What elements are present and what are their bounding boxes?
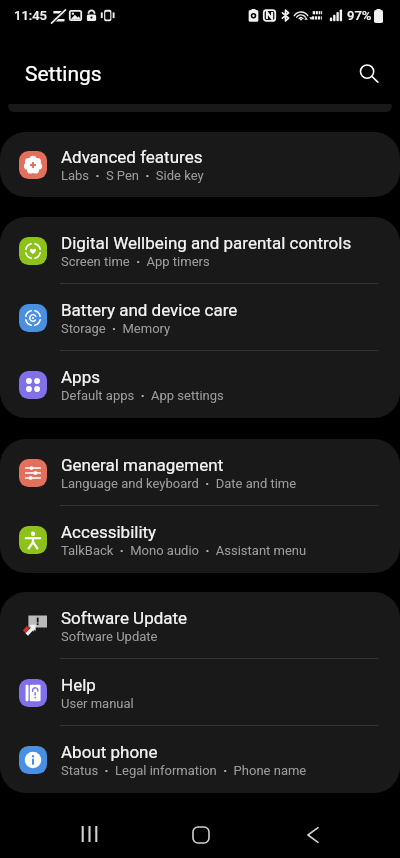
staticText: Battery and device care [61, 300, 238, 320]
staticText: Default apps · App settings [61, 388, 224, 403]
staticText: Storage · Memory [61, 321, 171, 336]
staticText: Advanced features [61, 147, 203, 167]
button[interactable]: Digital Wellbeing and parental controls [0, 217, 400, 284]
button[interactable]: Apps [0, 351, 400, 418]
staticText: Labs · S Pen · Side key [61, 168, 204, 183]
staticText: Software Update [61, 608, 188, 628]
button[interactable]: General management [0, 439, 400, 506]
staticText: Software Update [61, 629, 158, 644]
staticText: 97% [347, 8, 372, 23]
button[interactable]: About phone [0, 726, 400, 793]
staticText: Language and keyboard · Date and time [61, 476, 297, 491]
button[interactable]: Battery and device care [0, 284, 400, 351]
staticText: General management [61, 455, 224, 475]
staticText: About phone [61, 742, 158, 762]
button[interactable]: Accessibility [0, 506, 400, 573]
button[interactable]: Search [347, 52, 391, 96]
button[interactable]: Help [0, 659, 400, 726]
button[interactable]: Back [257, 827, 369, 858]
button[interactable]: Software Update [0, 592, 400, 659]
staticText: Apps [61, 367, 100, 387]
staticText: Help [61, 675, 96, 695]
staticText: Digital Wellbeing and parental controls [61, 233, 352, 253]
staticText: 11:45 [14, 8, 47, 23]
button[interactable]: Home [145, 827, 257, 858]
staticText: User manual [61, 696, 134, 711]
staticText: Accessibility [61, 522, 157, 542]
staticText: Status · Legal information · Phone name [61, 763, 307, 778]
staticText: TalkBack · Mono audio · Assistant menu [61, 543, 307, 558]
staticText: Settings [25, 62, 102, 87]
button[interactable]: Advanced features [0, 132, 400, 197]
staticText: Screen time · App timers [61, 254, 210, 269]
button[interactable]: Recent apps [33, 826, 145, 858]
